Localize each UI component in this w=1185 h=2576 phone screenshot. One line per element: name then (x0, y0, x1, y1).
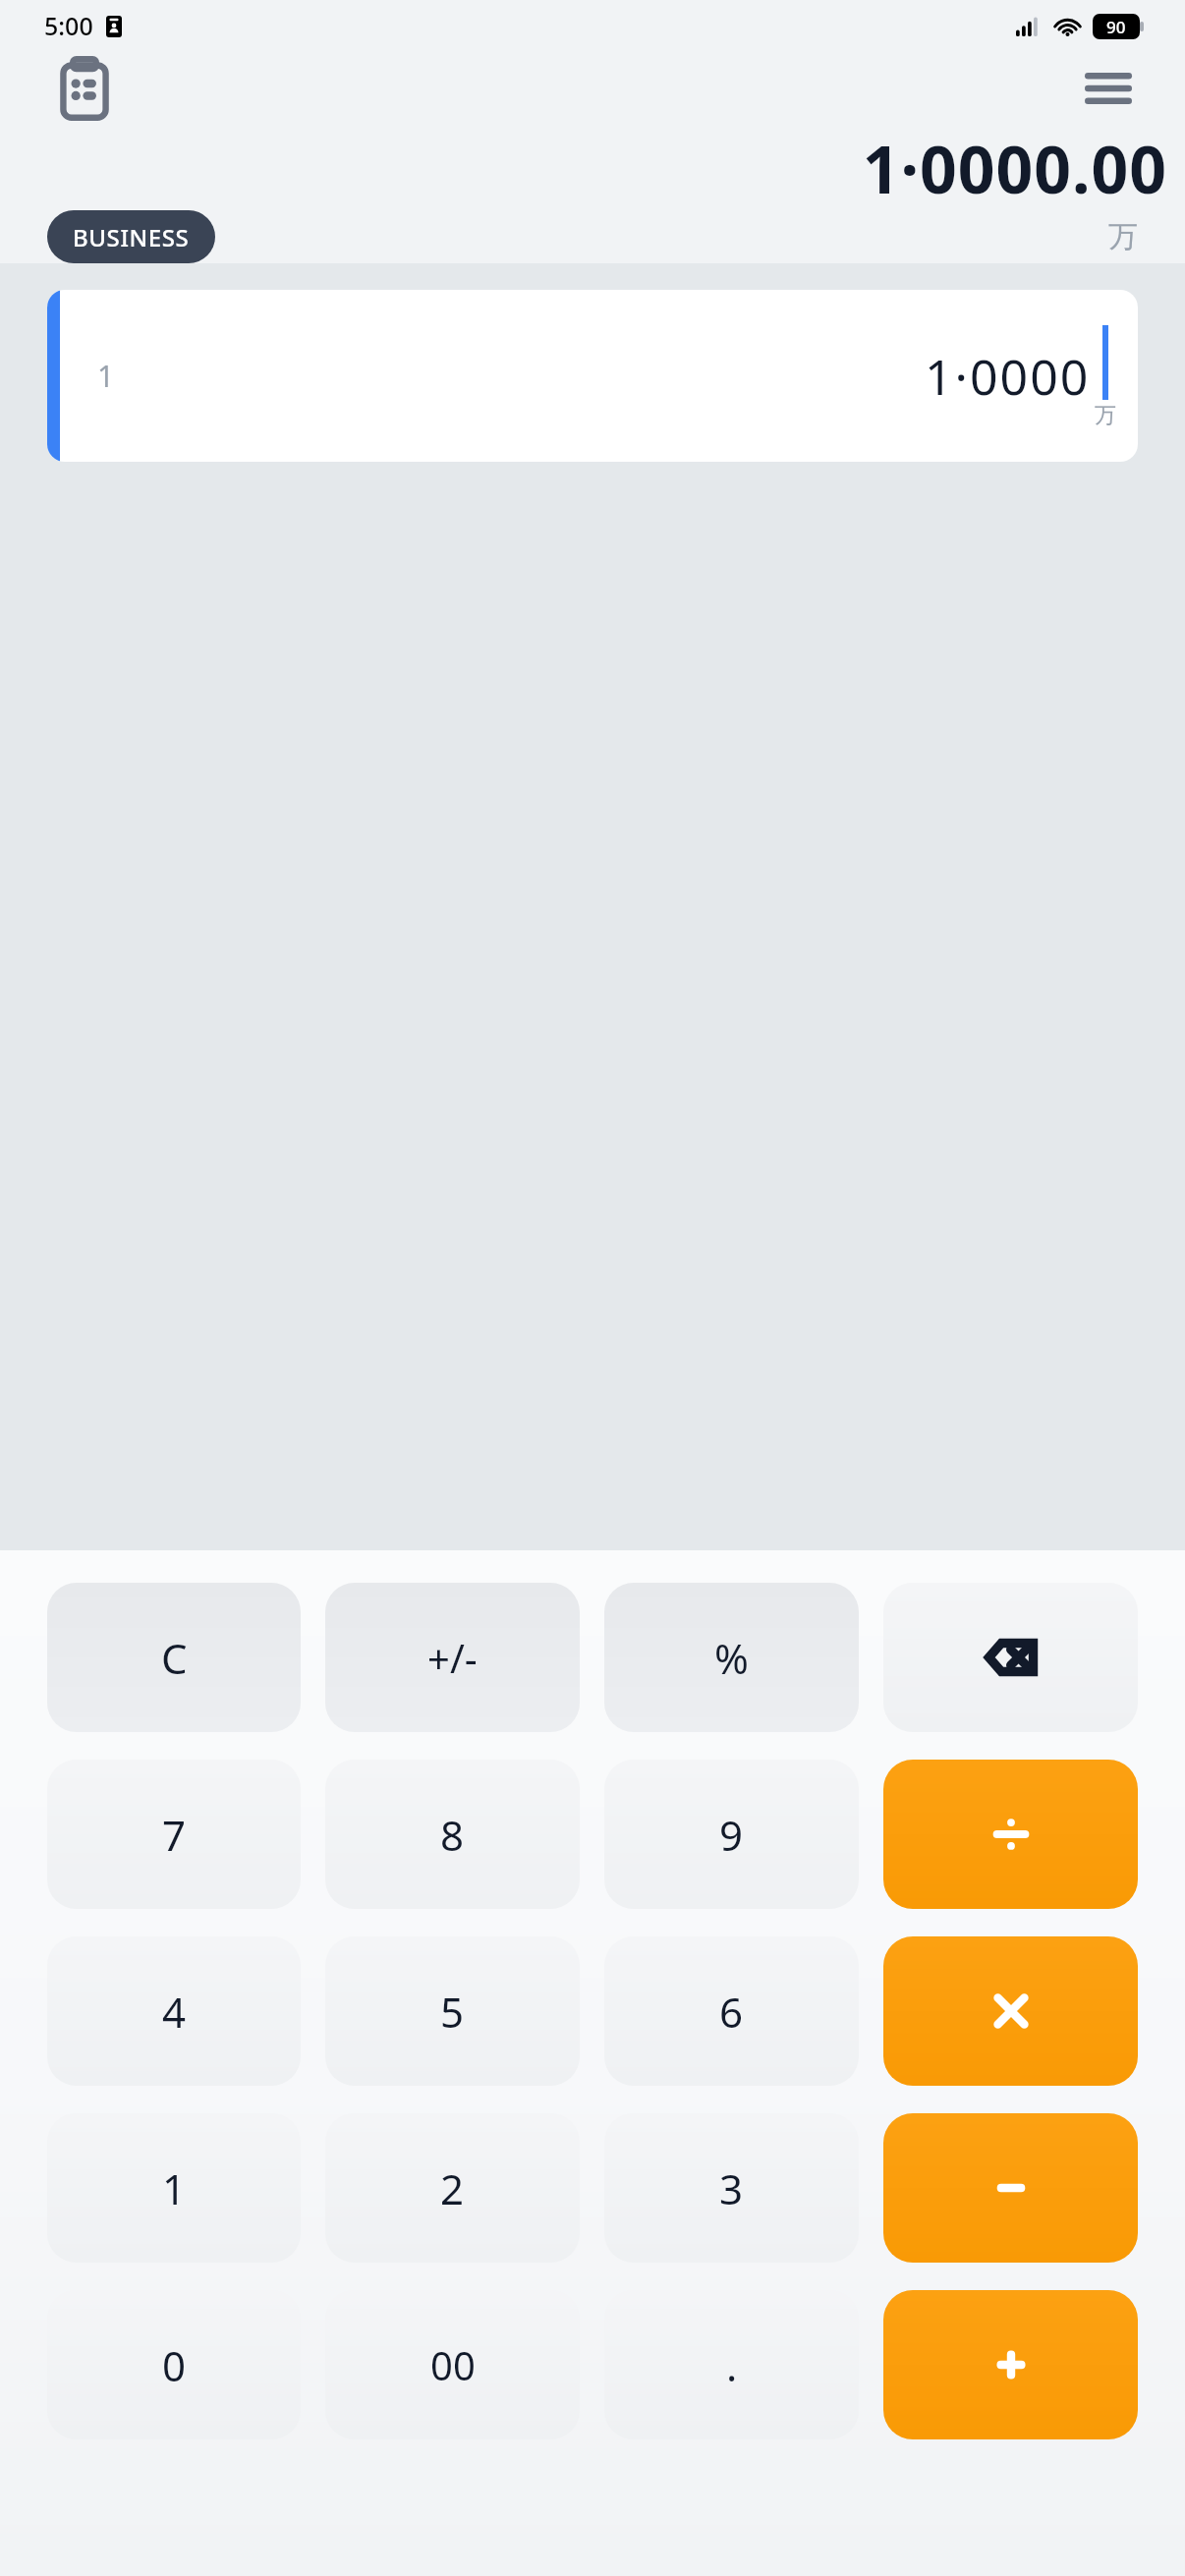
button[interactable]: 1 (47, 290, 1138, 462)
button[interactable]: 2 (325, 2113, 580, 2263)
staticText: 6 (719, 1984, 744, 2040)
button[interactable]: 6 (604, 1936, 859, 2086)
staticText: 1·0000 (925, 343, 1091, 410)
staticText: 9 (719, 1807, 744, 1863)
staticText: C (161, 1630, 188, 1686)
staticText: 2 (440, 2160, 465, 2216)
staticText: 万 (1108, 218, 1138, 255)
button[interactable]: Menu (1079, 63, 1138, 114)
button[interactable] (883, 2113, 1138, 2263)
button[interactable]: BUSINESS (47, 210, 215, 263)
staticText: 3 (719, 2160, 744, 2216)
button[interactable]: +/- (325, 1583, 580, 1732)
staticText: BUSINESS (73, 221, 190, 253)
staticText: . (726, 2337, 738, 2393)
staticText: 1·0000.00 (862, 124, 1167, 210)
button[interactable]: 9 (604, 1760, 859, 1909)
button[interactable]: C (47, 1583, 301, 1732)
staticText: +/- (427, 1631, 478, 1684)
button[interactable] (883, 1760, 1138, 1909)
button[interactable]: 1 (47, 2113, 301, 2263)
staticText: 5:00 (44, 9, 93, 42)
button[interactable]: History (59, 58, 110, 119)
button[interactable]: 7 (47, 1760, 301, 1909)
button[interactable] (883, 2290, 1138, 2439)
button[interactable]: Backspace (883, 1583, 1138, 1732)
button[interactable]: 5 (325, 1936, 580, 2086)
button[interactable]: 3 (604, 2113, 859, 2263)
button[interactable]: 0 (47, 2290, 301, 2439)
staticText: 00 (430, 2338, 476, 2391)
staticText: 1 (97, 356, 115, 396)
staticText: 0 (162, 2337, 187, 2393)
button[interactable]: 8 (325, 1760, 580, 1909)
staticText: 4 (162, 1984, 187, 2040)
button[interactable]: . (604, 2290, 859, 2439)
button[interactable]: 00 (325, 2290, 580, 2439)
staticText: % (714, 1630, 749, 1686)
button[interactable]: % (604, 1583, 859, 1732)
staticText: 5 (440, 1984, 465, 2040)
staticText: 万 (1095, 402, 1116, 429)
staticText: 90 (1106, 16, 1126, 38)
button[interactable]: 4 (47, 1936, 301, 2086)
staticText: 1 (162, 2160, 187, 2216)
staticText: 8 (440, 1807, 465, 1863)
button[interactable] (883, 1936, 1138, 2086)
staticText: 7 (162, 1807, 187, 1863)
